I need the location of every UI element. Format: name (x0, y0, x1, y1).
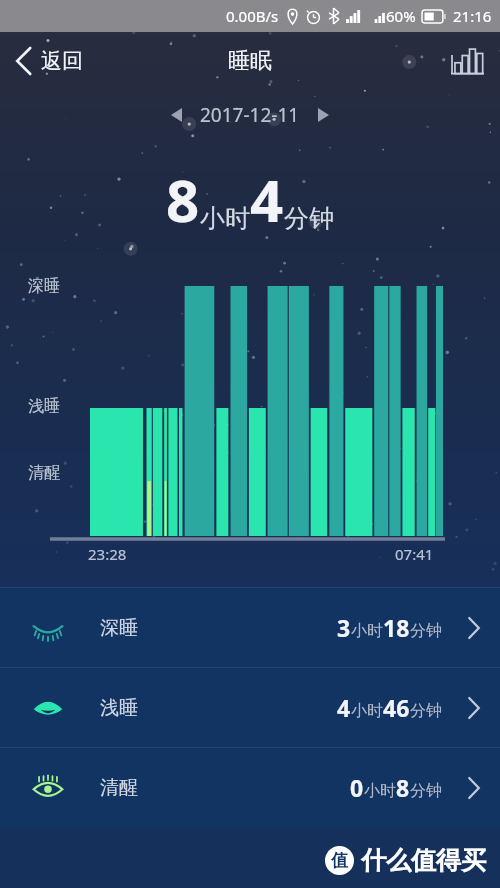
staticText: 4 (337, 692, 351, 723)
button[interactable]: 清醒 (0, 748, 500, 827)
staticText: 值 (331, 850, 348, 871)
staticText: 小时 (200, 203, 250, 234)
staticText: 睡眠 (228, 47, 272, 75)
staticText: 8 (166, 160, 200, 239)
staticText: 深睡 (28, 276, 60, 296)
button[interactable]: 后一天 (310, 100, 337, 130)
button[interactable]: 浅睡 (0, 668, 500, 747)
staticText: 分钟 (284, 203, 334, 234)
staticText: 07:41 (395, 544, 434, 564)
staticText: 什么值得买 (361, 845, 486, 876)
button[interactable]: 前一天 (163, 100, 190, 130)
staticText: 返回 (41, 48, 83, 74)
staticText: 0 (350, 772, 364, 803)
staticText: 小时 (351, 621, 383, 641)
staticText: 46 (383, 692, 410, 723)
staticText: 8 (396, 772, 410, 803)
staticText: 3 (337, 612, 351, 643)
staticText: 浅睡 (28, 396, 60, 416)
button[interactable]: 统计图表 (435, 36, 500, 86)
staticText: 浅睡 (100, 696, 138, 720)
button[interactable]: 深睡 (0, 588, 500, 667)
staticText: 深睡 (100, 616, 138, 640)
staticText: 2017-12-11 (200, 102, 300, 128)
staticText: 清醒 (28, 463, 60, 483)
staticText: 分钟 (410, 621, 442, 641)
staticText: 清醒 (100, 776, 138, 800)
staticText: 小时 (351, 701, 383, 721)
staticText: 分钟 (410, 781, 442, 801)
staticText: 0.00B/s (226, 6, 279, 26)
staticText: 4 (250, 160, 284, 239)
staticText: 小时 (364, 781, 396, 801)
staticText: 21:16 (453, 6, 492, 26)
staticText: 分钟 (410, 701, 442, 721)
button[interactable]: 返回 (0, 40, 97, 82)
staticText: 60% (386, 6, 416, 26)
staticText: 18 (383, 612, 410, 643)
staticText: 23:28 (88, 544, 127, 564)
